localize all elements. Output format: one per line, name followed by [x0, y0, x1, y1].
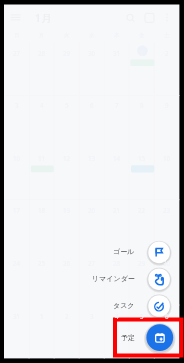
staticText: タスク — [113, 301, 135, 310]
button[interactable]: Reminder — [90, 268, 171, 290]
button[interactable]: Task — [90, 295, 171, 317]
staticText: 1月 — [35, 11, 52, 25]
staticText: 6 — [165, 312, 169, 320]
staticText: 30 — [163, 259, 171, 267]
staticText: リマインダー — [92, 274, 135, 283]
staticText: 4 — [115, 312, 119, 320]
staticText: 予定 — [121, 333, 135, 342]
button[interactable]: Goal — [90, 241, 171, 263]
staticText: ゴール — [113, 247, 135, 256]
staticText: 5 — [140, 312, 144, 320]
button[interactable]: New event — [90, 324, 174, 352]
